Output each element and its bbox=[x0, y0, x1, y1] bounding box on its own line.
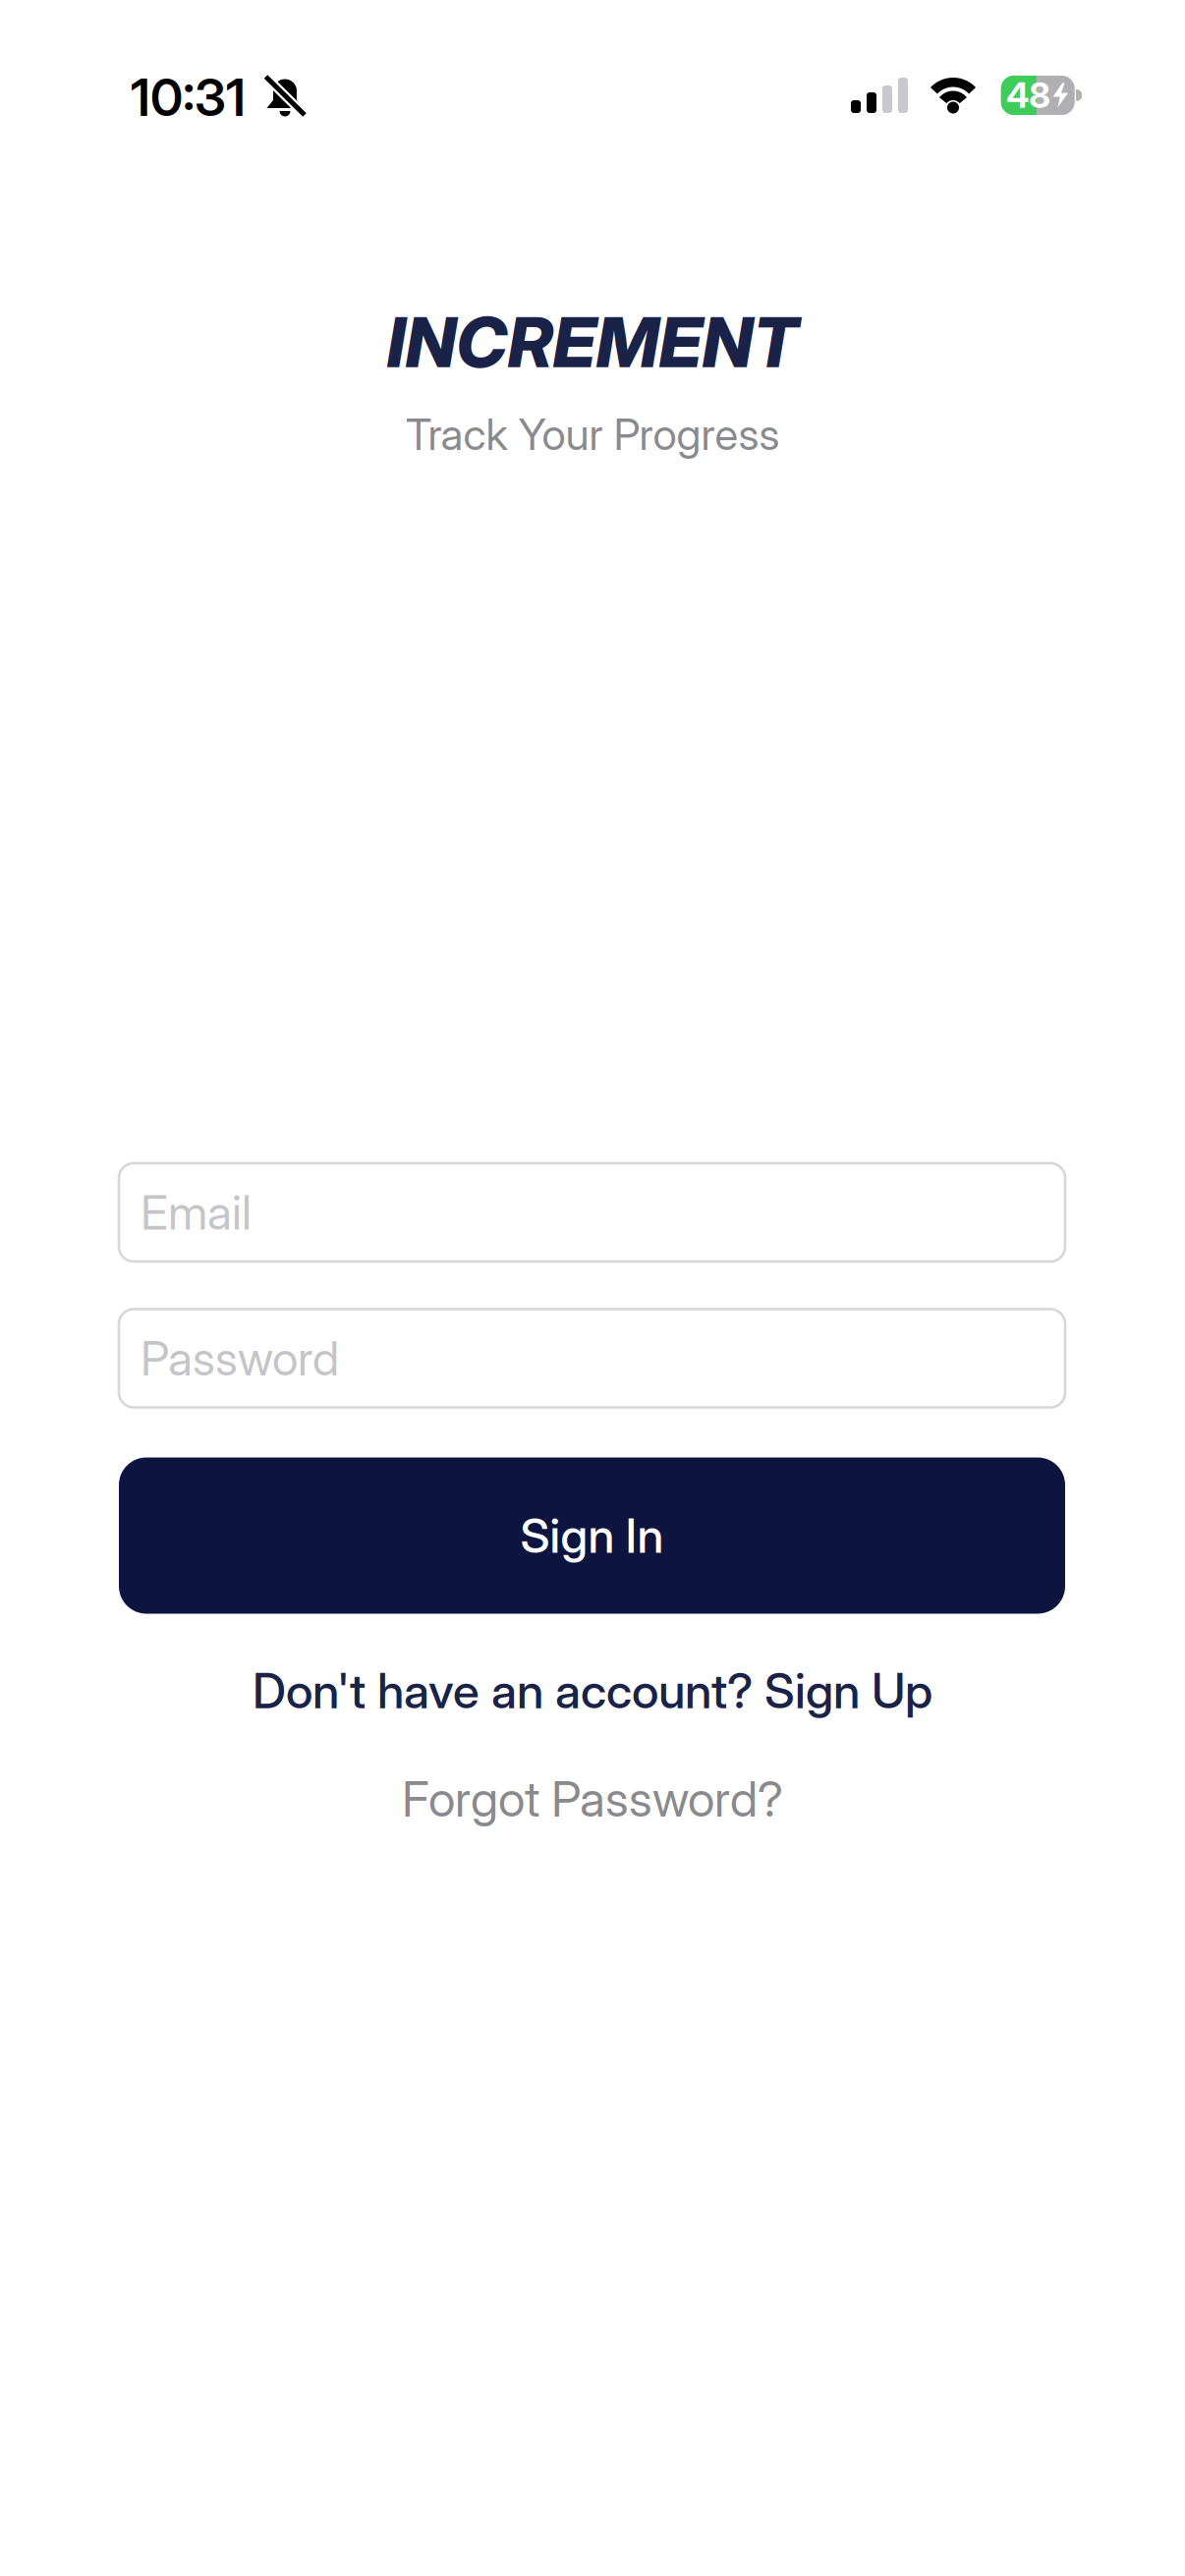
button[interactable]: Forgot Password? bbox=[402, 1769, 783, 1828]
secureTextField[interactable]: Password bbox=[119, 1309, 1065, 1407]
staticText: Password bbox=[141, 1330, 339, 1387]
staticText: Email bbox=[141, 1184, 252, 1241]
staticText: INCREMENT bbox=[387, 300, 798, 384]
staticText: Don't have an account? Sign Up bbox=[253, 1662, 932, 1720]
staticText: 10:31 bbox=[131, 66, 246, 128]
staticText: 48 bbox=[1006, 74, 1051, 116]
staticText: Sign In bbox=[520, 1507, 664, 1564]
staticText: Track Your Progress bbox=[405, 408, 780, 460]
button[interactable]: Sign In bbox=[119, 1457, 1065, 1614]
button[interactable]: Don't have an account? Sign Up bbox=[253, 1662, 932, 1720]
staticText: Forgot Password? bbox=[402, 1769, 783, 1828]
textField[interactable]: Email bbox=[119, 1163, 1065, 1261]
